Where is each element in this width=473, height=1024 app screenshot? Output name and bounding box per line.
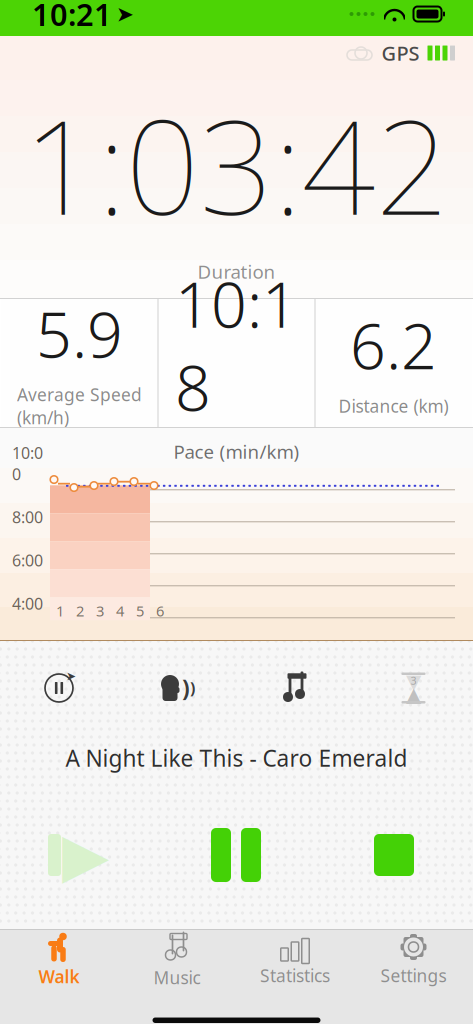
button[interactable]: Auto pause [0, 661, 118, 715]
staticText: ➤ [66, 669, 76, 683]
staticText: 6.2 [350, 303, 437, 387]
button[interactable]: Music [236, 661, 354, 715]
staticText: GPS [381, 40, 419, 66]
staticText: Pace (min/km) [173, 439, 299, 464]
button[interactable]: Voice feedback [118, 661, 236, 715]
button[interactable]: Stop [315, 813, 473, 897]
button[interactable]: Pause [157, 813, 315, 897]
staticText: 1 [56, 601, 64, 621]
staticText: ➤ [116, 2, 134, 26]
staticText: Pace (min/km) [179, 436, 294, 459]
staticText: Music [153, 966, 200, 989]
staticText: 2 [76, 601, 84, 621]
staticText: 10:21 [32, 0, 112, 34]
staticText: 5 [136, 601, 144, 621]
staticText: 6:00 [12, 550, 43, 571]
staticText: 5.9 [36, 292, 123, 375]
staticText: ) [182, 673, 190, 703]
staticText: 2:00 [12, 636, 43, 657]
staticText: 4 [116, 601, 124, 621]
button[interactable]: Statistics [236, 930, 354, 990]
staticText: 10:00 [12, 442, 43, 484]
staticText: 4:00 [12, 593, 43, 614]
button[interactable]: Walk [0, 930, 118, 990]
staticText: Settings [380, 964, 446, 987]
staticText: 6 [156, 601, 164, 621]
staticText: Duration [197, 259, 275, 284]
staticText: 8:00 [12, 506, 43, 528]
button[interactable]: Interval timer [354, 661, 473, 715]
staticText: 3 [96, 601, 104, 621]
staticText: Average Speed (km/h) [17, 383, 142, 429]
staticText: Statistics [260, 964, 330, 987]
staticText: 10:18 [175, 262, 298, 428]
staticText: ▲ [406, 683, 421, 706]
staticText: Walk [38, 965, 79, 988]
staticText: 3 [410, 673, 416, 688]
button[interactable]: Music [118, 930, 236, 990]
button[interactable]: Resume [0, 813, 157, 897]
staticText: ▼ [406, 670, 421, 693]
staticText: Distance (km) [338, 395, 448, 418]
staticText: ) [190, 677, 195, 699]
button[interactable]: Settings [354, 930, 473, 990]
staticText: 1:03:42 [23, 79, 449, 250]
staticText: A Night Like This - Caro Emerald [65, 743, 407, 773]
staticText: ▶ [62, 820, 109, 890]
